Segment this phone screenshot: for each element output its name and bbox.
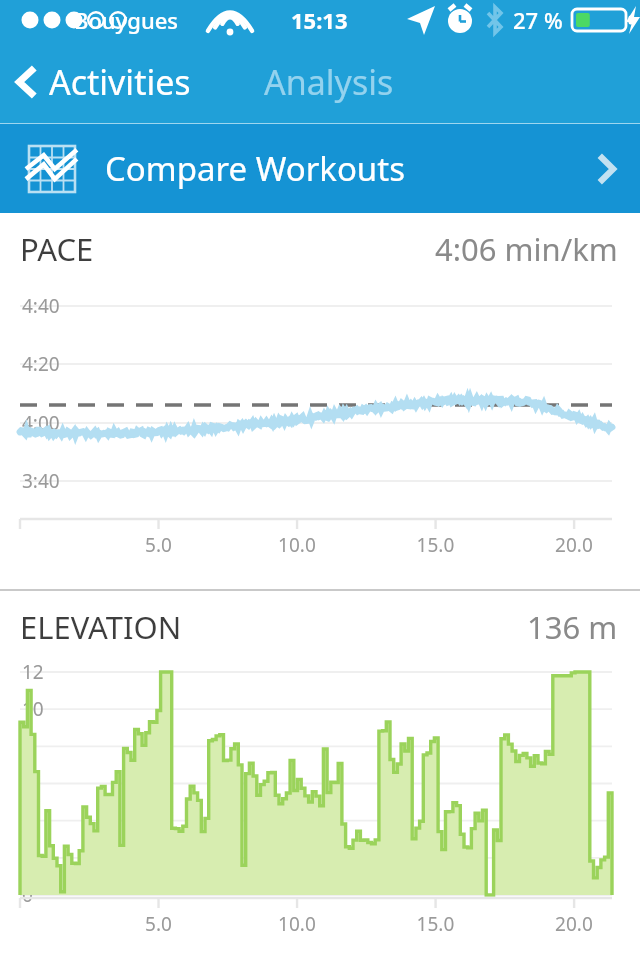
staticText: Activities xyxy=(49,59,191,105)
staticText: 15:13 xyxy=(291,5,348,35)
staticText: Bouygues xyxy=(74,5,178,35)
staticText: 136 m xyxy=(527,606,618,648)
staticText: Compare Workouts xyxy=(105,146,405,191)
staticText: PACE xyxy=(20,228,94,270)
button[interactable]: Activities xyxy=(0,49,205,115)
staticText: ELEVATION xyxy=(20,606,182,648)
staticText: 4:06 min/km xyxy=(435,228,618,270)
other: Open Compare Workouts xyxy=(594,151,618,187)
button[interactable]: Compare Workouts xyxy=(0,124,640,213)
button[interactable]: Analysis xyxy=(256,49,402,115)
staticText: 27 % xyxy=(513,5,563,35)
